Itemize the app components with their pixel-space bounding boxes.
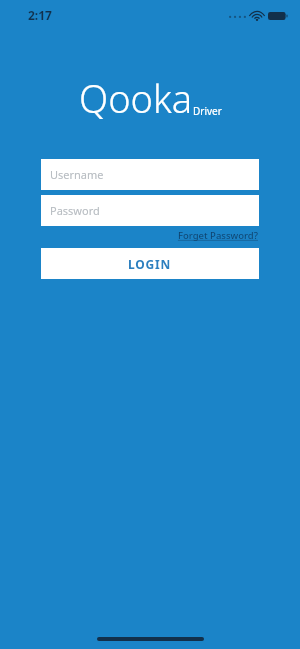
staticText: Qooka xyxy=(79,72,193,124)
staticText: Username xyxy=(50,167,104,182)
staticText: Driver xyxy=(193,104,222,118)
staticText: Forget Password? xyxy=(177,229,258,242)
button[interactable]: LOGIN xyxy=(41,248,259,279)
staticText: LOGIN xyxy=(128,256,172,272)
button[interactable]: Password xyxy=(41,195,259,226)
staticText: 2:17 xyxy=(28,7,52,23)
staticText: Password xyxy=(50,203,100,218)
button[interactable]: Username xyxy=(41,159,259,190)
button[interactable]: Forget Password? xyxy=(176,228,259,243)
